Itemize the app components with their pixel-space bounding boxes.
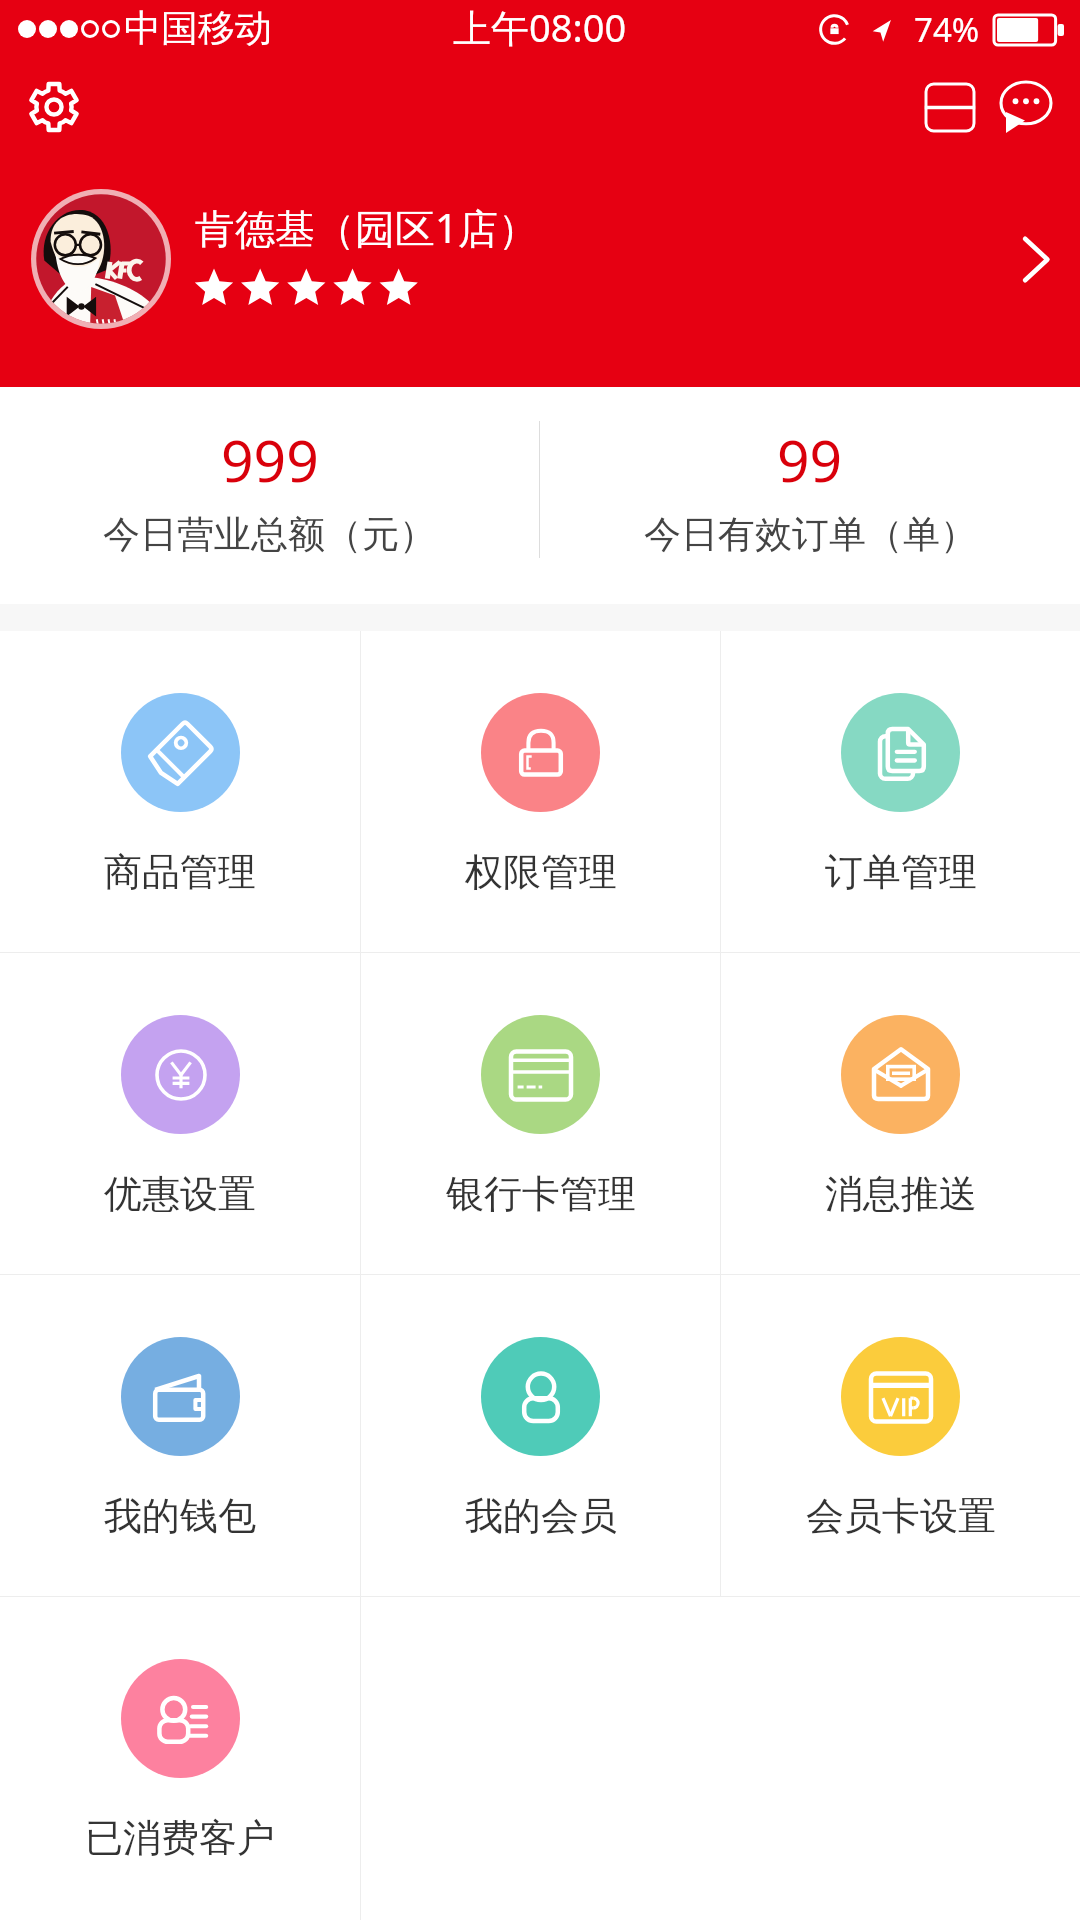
button[interactable]: 肯德基（园区1店）	[0, 179, 1080, 339]
staticText: 999	[221, 421, 319, 499]
button[interactable]: 已消费客户	[0, 1597, 360, 1920]
staticText: 今日有效订单（单）	[644, 511, 977, 558]
staticText: 会员卡设置	[806, 1492, 996, 1540]
button[interactable]: Scan	[912, 69, 988, 145]
staticText: 我的会员	[465, 1492, 617, 1540]
button[interactable]: Settings	[18, 71, 90, 143]
staticText: 肯德基（园区1店）	[195, 200, 538, 255]
staticText: 中国移动	[124, 5, 272, 52]
button[interactable]: Messages	[988, 69, 1064, 145]
staticText: 权限管理	[465, 848, 617, 896]
button[interactable]: 商品管理	[0, 631, 360, 952]
button[interactable]: 999	[0, 381, 539, 598]
button[interactable]: 订单管理	[721, 631, 1080, 952]
staticText: 消息推送	[825, 1170, 977, 1218]
staticText: 银行卡管理	[446, 1170, 636, 1218]
button[interactable]: 会员卡设置	[721, 1275, 1080, 1596]
button[interactable]: 99	[540, 381, 1080, 598]
staticText: 订单管理	[825, 848, 977, 896]
button[interactable]: 银行卡管理	[361, 953, 720, 1274]
staticText: 我的钱包	[104, 1492, 256, 1540]
staticText: 已消费客户	[85, 1814, 275, 1862]
staticText: 99	[777, 421, 843, 499]
staticText: 商品管理	[104, 848, 256, 896]
staticText: 今日营业总额（元）	[103, 511, 436, 558]
staticText: 上午08:00	[453, 1, 627, 53]
button[interactable]: 我的会员	[361, 1275, 720, 1596]
staticText: 优惠设置	[104, 1170, 256, 1218]
button[interactable]: 消息推送	[721, 953, 1080, 1274]
button[interactable]: 我的钱包	[0, 1275, 360, 1596]
staticText: 74%	[914, 7, 980, 52]
button[interactable]: 优惠设置	[0, 953, 360, 1274]
button[interactable]: 权限管理	[361, 631, 720, 952]
